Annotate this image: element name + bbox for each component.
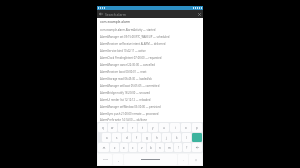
staticText: h <box>156 136 158 140</box>
staticText: r <box>132 126 134 130</box>
staticText: d <box>126 136 128 140</box>
button[interactable]: f <box>132 133 141 142</box>
staticText: AlarmManager setExact 05:05:05 — committ… <box>100 84 160 88</box>
staticText: , <box>118 158 119 162</box>
staticText: t <box>142 126 144 130</box>
staticText: AlarmUi render list 12:12:12 — reloaded <box>100 98 151 102</box>
staticText: c <box>132 146 134 150</box>
button[interactable]: AlarmPrefs write 14:14:00 — ok/done <box>97 117 203 122</box>
button[interactable]: h <box>152 133 161 142</box>
button[interactable]: AlarmService bind 10:42:11 — active <box>97 47 203 54</box>
staticText: AlarmManager setWindow 03:30:00 — persis… <box>100 105 161 109</box>
button[interactable]: Voice input <box>189 154 202 165</box>
staticText: com.example.alarm <box>100 20 131 24</box>
staticText: z <box>114 146 116 150</box>
button[interactable]: Shift <box>98 143 109 152</box>
button[interactable]: AlarmBridge notify 18:20:00 — snoozed <box>97 89 203 96</box>
button[interactable]: AlarmManager setWindow 03:30:00 — persis… <box>97 103 203 110</box>
staticText: e <box>122 126 124 130</box>
button[interactable]: y <box>148 123 158 132</box>
staticText: i <box>175 126 176 130</box>
staticText: s <box>116 136 118 140</box>
button[interactable]: t <box>138 123 147 132</box>
staticText: ?123 <box>103 158 108 161</box>
staticText: a <box>106 136 108 140</box>
staticText: AlarmManager set 09:15:00 RTC_WAKEUP — s… <box>100 35 170 39</box>
button[interactable]: u <box>159 123 169 132</box>
staticText: AlarmReceiver boot 00:00:01 — reset <box>100 70 147 74</box>
staticText: l <box>186 136 187 140</box>
staticText: ! <box>178 146 179 150</box>
button[interactable]: AlarmManager set 09:15:00 RTC_WAKEUP — s… <box>97 33 203 40</box>
staticText: q <box>102 126 104 130</box>
button[interactable]: AlarmClock PendingIntent 07:00:00 — requ… <box>97 54 203 61</box>
button[interactable]: AlarmStorage read 06:45:30 — loaded/ok <box>97 75 203 82</box>
staticText: AlarmSync push 21:00:00 remote — process… <box>100 112 159 116</box>
staticText: AlarmBridge notify 18:20:00 — snoozed <box>100 91 150 95</box>
staticText: u <box>163 126 165 130</box>
button[interactable]: b <box>147 143 155 152</box>
button[interactable]: AlarmUi render list 12:12:12 — reloaded <box>97 96 203 103</box>
button[interactable]: n <box>156 143 164 152</box>
staticText: v <box>141 146 143 150</box>
button[interactable]: Backspace <box>192 143 202 152</box>
button[interactable]: Space <box>124 154 177 165</box>
button[interactable]: com.example.alarm.AlarmActivity — starte… <box>97 26 203 33</box>
button[interactable]: p <box>192 123 202 132</box>
button[interactable]: l <box>182 133 191 142</box>
staticText: ? <box>186 146 188 150</box>
button[interactable]: AlarmReceiver onReceive intent ALARM — d… <box>97 40 203 47</box>
staticText: o <box>185 126 187 130</box>
button[interactable]: i <box>170 123 180 132</box>
button[interactable]: z <box>110 143 119 152</box>
button[interactable]: Back <box>97 10 105 18</box>
staticText: AlarmReceiver onReceive intent ALARM — d… <box>100 42 166 46</box>
button[interactable]: a <box>102 133 111 142</box>
button[interactable]: g <box>142 133 151 142</box>
staticText: com.example.alarm.AlarmActivity — starte… <box>100 28 156 32</box>
staticText: m <box>168 146 171 150</box>
button[interactable]: s <box>112 133 121 142</box>
staticText: k <box>176 136 178 140</box>
staticText: Search alarm <box>105 12 126 17</box>
staticText: AlarmClock PendingIntent 07:00:00 — requ… <box>100 56 162 60</box>
button[interactable]: x <box>120 143 128 152</box>
button[interactable]: e <box>118 123 127 132</box>
button[interactable]: q <box>98 123 107 132</box>
button[interactable]: m <box>165 143 173 152</box>
button[interactable]: o <box>181 123 191 132</box>
staticText: y <box>152 126 154 130</box>
button[interactable]: AlarmManager setExact 05:05:05 — committ… <box>97 82 203 89</box>
staticText: g <box>146 136 148 140</box>
button[interactable]: k <box>172 133 181 142</box>
staticText: AlarmService bind 10:42:11 — active <box>100 49 146 53</box>
button[interactable]: j <box>162 133 171 142</box>
staticText: f <box>136 136 137 140</box>
button[interactable]: Search alarm <box>105 10 195 18</box>
staticText: j <box>166 136 167 140</box>
button[interactable]: w <box>108 123 117 132</box>
button[interactable]: d <box>122 133 131 142</box>
button[interactable]: ! <box>174 143 182 152</box>
button[interactable]: Clear search <box>195 10 203 18</box>
staticText: AlarmStorage read 06:45:30 — loaded/ok <box>100 77 152 81</box>
button[interactable]: v <box>138 143 146 152</box>
button[interactable]: com.example.alarm <box>97 18 203 26</box>
button[interactable]: r <box>128 123 137 132</box>
button[interactable]: AlarmManager cancel 22:30:00 — cancelled <box>97 61 203 68</box>
staticText: n <box>159 146 161 150</box>
button[interactable]: Enter <box>192 133 202 142</box>
staticText: AlarmManager cancel 22:30:00 — cancelled <box>100 63 155 67</box>
staticText: b <box>150 146 152 150</box>
staticText: . <box>183 158 184 162</box>
staticText: x <box>123 146 125 150</box>
button[interactable]: c <box>129 143 137 152</box>
button[interactable]: AlarmSync push 21:00:00 remote — process… <box>97 110 203 117</box>
staticText: w <box>111 126 114 130</box>
button[interactable]: ?123 <box>98 154 112 165</box>
button[interactable]: ? <box>183 143 191 152</box>
staticText: AlarmPrefs write 14:14:00 — ok/done <box>100 118 148 122</box>
button[interactable]: AlarmReceiver boot 00:00:01 — reset <box>97 68 203 75</box>
